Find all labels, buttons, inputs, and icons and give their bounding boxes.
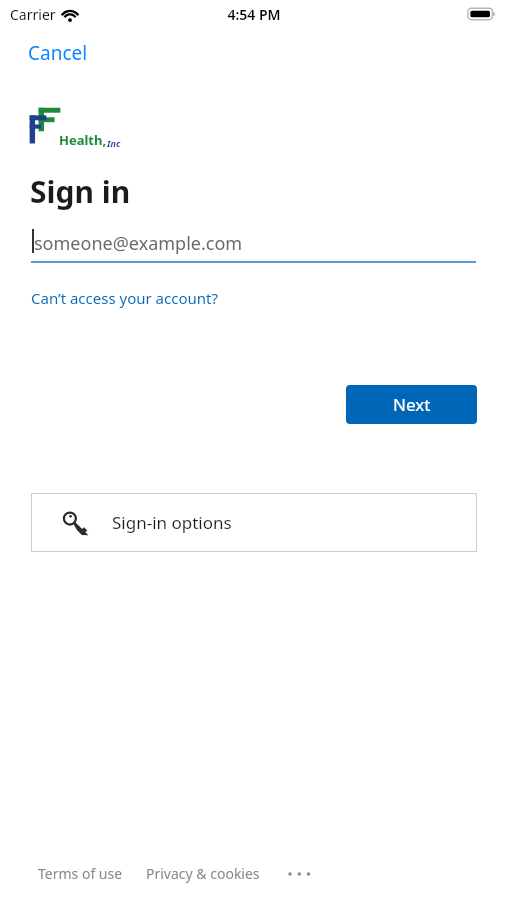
staticText: Sign-in options — [112, 511, 232, 534]
button[interactable]: More options — [282, 864, 316, 884]
staticText: Sign in — [30, 171, 131, 212]
button[interactable]: someone@example.com — [31, 222, 476, 263]
staticText: Next — [393, 393, 431, 416]
staticText: Can’t access your account? — [31, 288, 218, 308]
staticText: Carrier — [10, 5, 56, 24]
button[interactable]: Cancel — [18, 36, 98, 70]
button[interactable]: Privacy & cookies — [146, 861, 260, 886]
staticText: someone@example.com — [34, 231, 243, 256]
staticText: Health, — [59, 131, 107, 149]
button[interactable]: Next — [346, 385, 477, 424]
button[interactable]: Terms of use — [38, 861, 123, 886]
staticText: Inc — [107, 137, 121, 149]
staticText: Terms of use — [38, 864, 123, 883]
staticText: 4:54 PM — [227, 5, 281, 24]
staticText: Cancel — [28, 40, 88, 66]
button[interactable]: Can’t access your account? — [30, 286, 219, 310]
button[interactable]: Sign-in options — [31, 493, 477, 552]
staticText: Privacy & cookies — [146, 864, 260, 883]
